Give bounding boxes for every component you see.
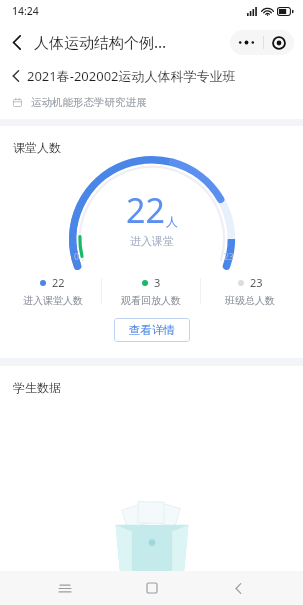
staticText: 22 [126,187,165,233]
staticText: 人 [166,214,178,229]
staticText: 0 [74,251,79,263]
staticText: 进入课堂 [130,234,174,248]
staticText: 3 [154,275,161,290]
button[interactable]: 3 [102,275,200,307]
staticText: 学生数据 [13,380,61,395]
button[interactable]: Close mini program [264,30,294,55]
staticText: 运动机能形态学研究进展 [31,96,147,109]
button[interactable]: 22 [4,275,101,307]
staticText: 课堂人数 [13,140,61,155]
staticText: 23 [224,251,234,263]
button[interactable]: Home [130,571,174,605]
staticText: 14:24 [12,4,39,18]
button[interactable]: 2021春-202002运动人体科学专业班 [0,62,303,90]
staticText: 22 [52,275,65,290]
button[interactable]: More options [230,30,263,55]
staticText: 观看回放人数 [121,294,181,307]
staticText: 人体运动结构个例… [34,32,167,52]
button[interactable]: Back [0,25,34,59]
button[interactable]: Back [216,571,260,605]
staticText: 查看详情 [129,323,175,337]
button[interactable]: 23 [201,275,299,307]
staticText: 进入课堂人数 [23,294,83,307]
staticText: 班级总人数 [225,294,275,307]
staticText: 23 [250,275,263,290]
button[interactable]: Recent apps [43,571,87,605]
button[interactable]: 查看详情 [114,318,190,342]
staticText: 2021春-202002运动人体科学专业班 [27,67,236,85]
